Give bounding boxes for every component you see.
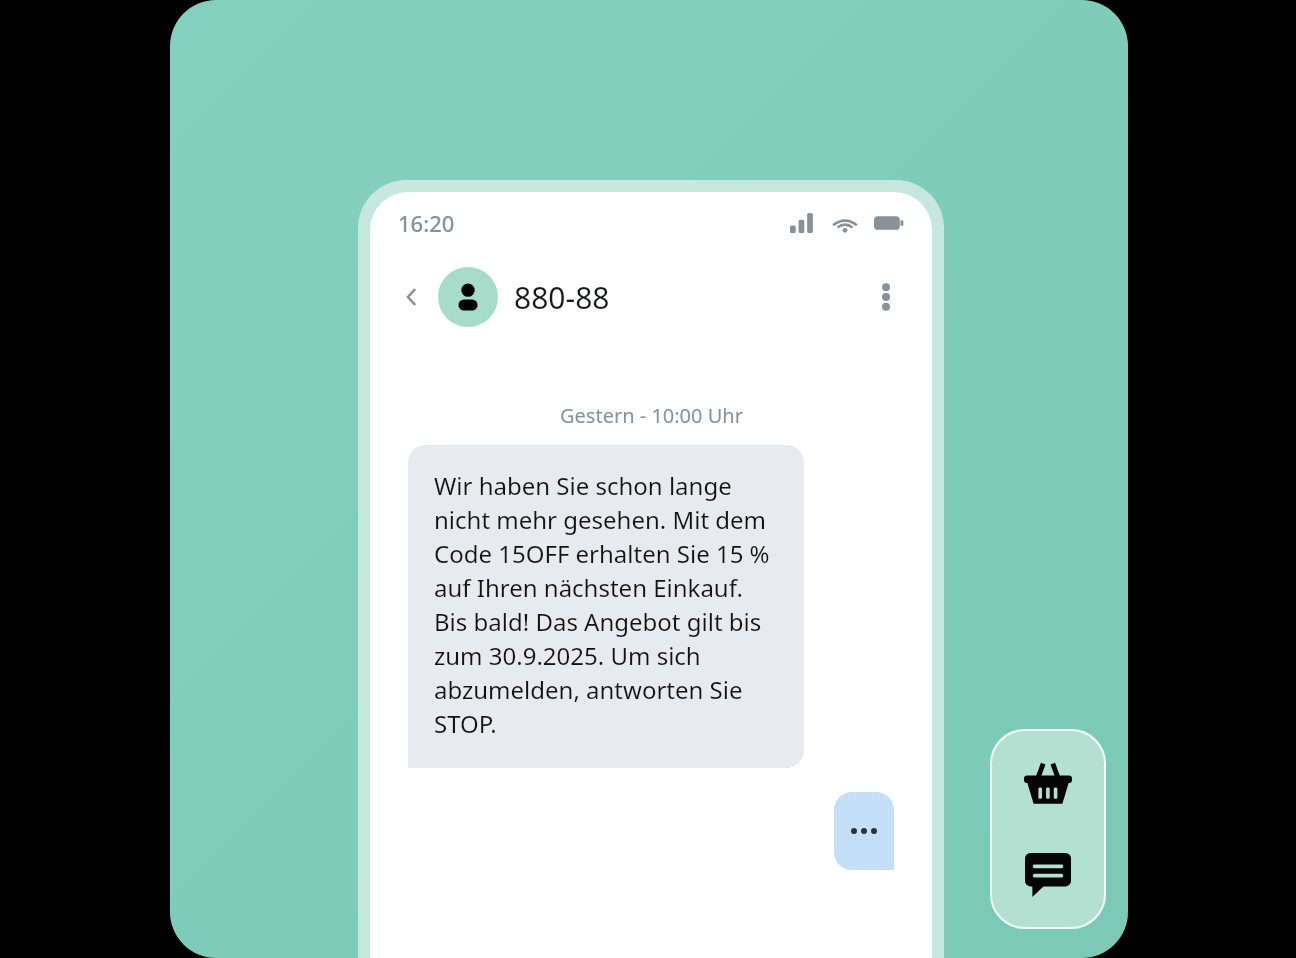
button[interactable]: 880-88 [438, 267, 610, 327]
button[interactable]: Wir haben Sie schon lange nicht mehr ges… [408, 445, 804, 768]
staticText: 880-88 [514, 277, 610, 318]
button[interactable]: Shop basket [1010, 745, 1086, 821]
button[interactable]: Back [392, 277, 432, 317]
button[interactable]: Typing [834, 792, 894, 870]
staticText: Wir haben Sie schon lange nicht mehr ges… [434, 469, 778, 740]
button[interactable]: Messages [1010, 837, 1086, 913]
staticText: 16:20 [398, 208, 455, 238]
button[interactable]: More options [864, 275, 908, 319]
staticText: Gestern - 10:00 Uhr [560, 402, 743, 429]
